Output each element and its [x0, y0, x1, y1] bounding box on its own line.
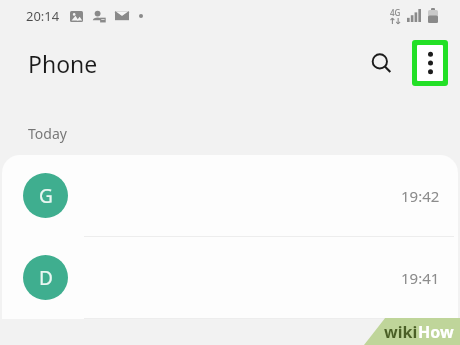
button[interactable]: G	[2, 155, 458, 237]
staticText: D	[39, 265, 53, 291]
staticText: 4G	[390, 7, 401, 18]
staticText: Phone	[28, 48, 98, 79]
button[interactable]: D	[2, 237, 458, 319]
button[interactable]: More options	[417, 45, 443, 81]
staticText: Today	[28, 124, 67, 143]
staticText: wiki	[384, 321, 418, 343]
staticText: How	[418, 321, 454, 343]
staticText: 20:14	[26, 7, 60, 25]
button[interactable]: Search	[360, 42, 402, 84]
staticText: 19:42	[401, 186, 440, 206]
staticText: 19:41	[401, 268, 440, 288]
staticText: G	[39, 183, 53, 209]
